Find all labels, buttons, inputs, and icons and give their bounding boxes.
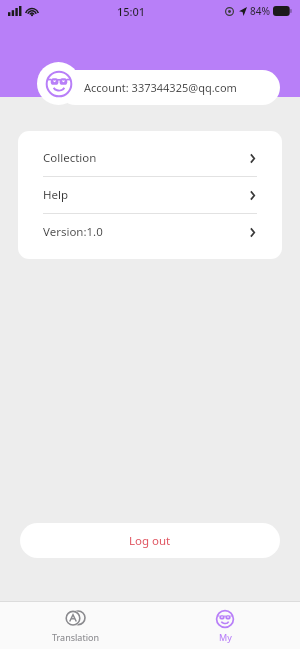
- staticText: Version:1.0: [43, 224, 103, 240]
- button[interactable]: Help: [18, 177, 282, 213]
- staticText: Log out: [129, 533, 171, 549]
- button[interactable]: Translation: [0, 602, 150, 649]
- staticText: My: [219, 631, 232, 643]
- staticText: 15:01: [117, 4, 146, 19]
- button[interactable]: Log out: [20, 523, 280, 558]
- button[interactable]: Profile avatar: [37, 62, 80, 105]
- staticText: Help: [43, 187, 69, 203]
- staticText: Translation: [52, 631, 99, 643]
- button[interactable]: Version:1.0: [18, 214, 282, 250]
- staticText: Collection: [43, 150, 97, 166]
- button[interactable]: My: [150, 602, 300, 649]
- staticText: 84%: [250, 4, 270, 18]
- button[interactable]: Collection: [18, 140, 282, 176]
- staticText: Account: 337344325@qq.com: [84, 80, 237, 95]
- button[interactable]: Account: 337344325@qq.com: [58, 70, 280, 105]
